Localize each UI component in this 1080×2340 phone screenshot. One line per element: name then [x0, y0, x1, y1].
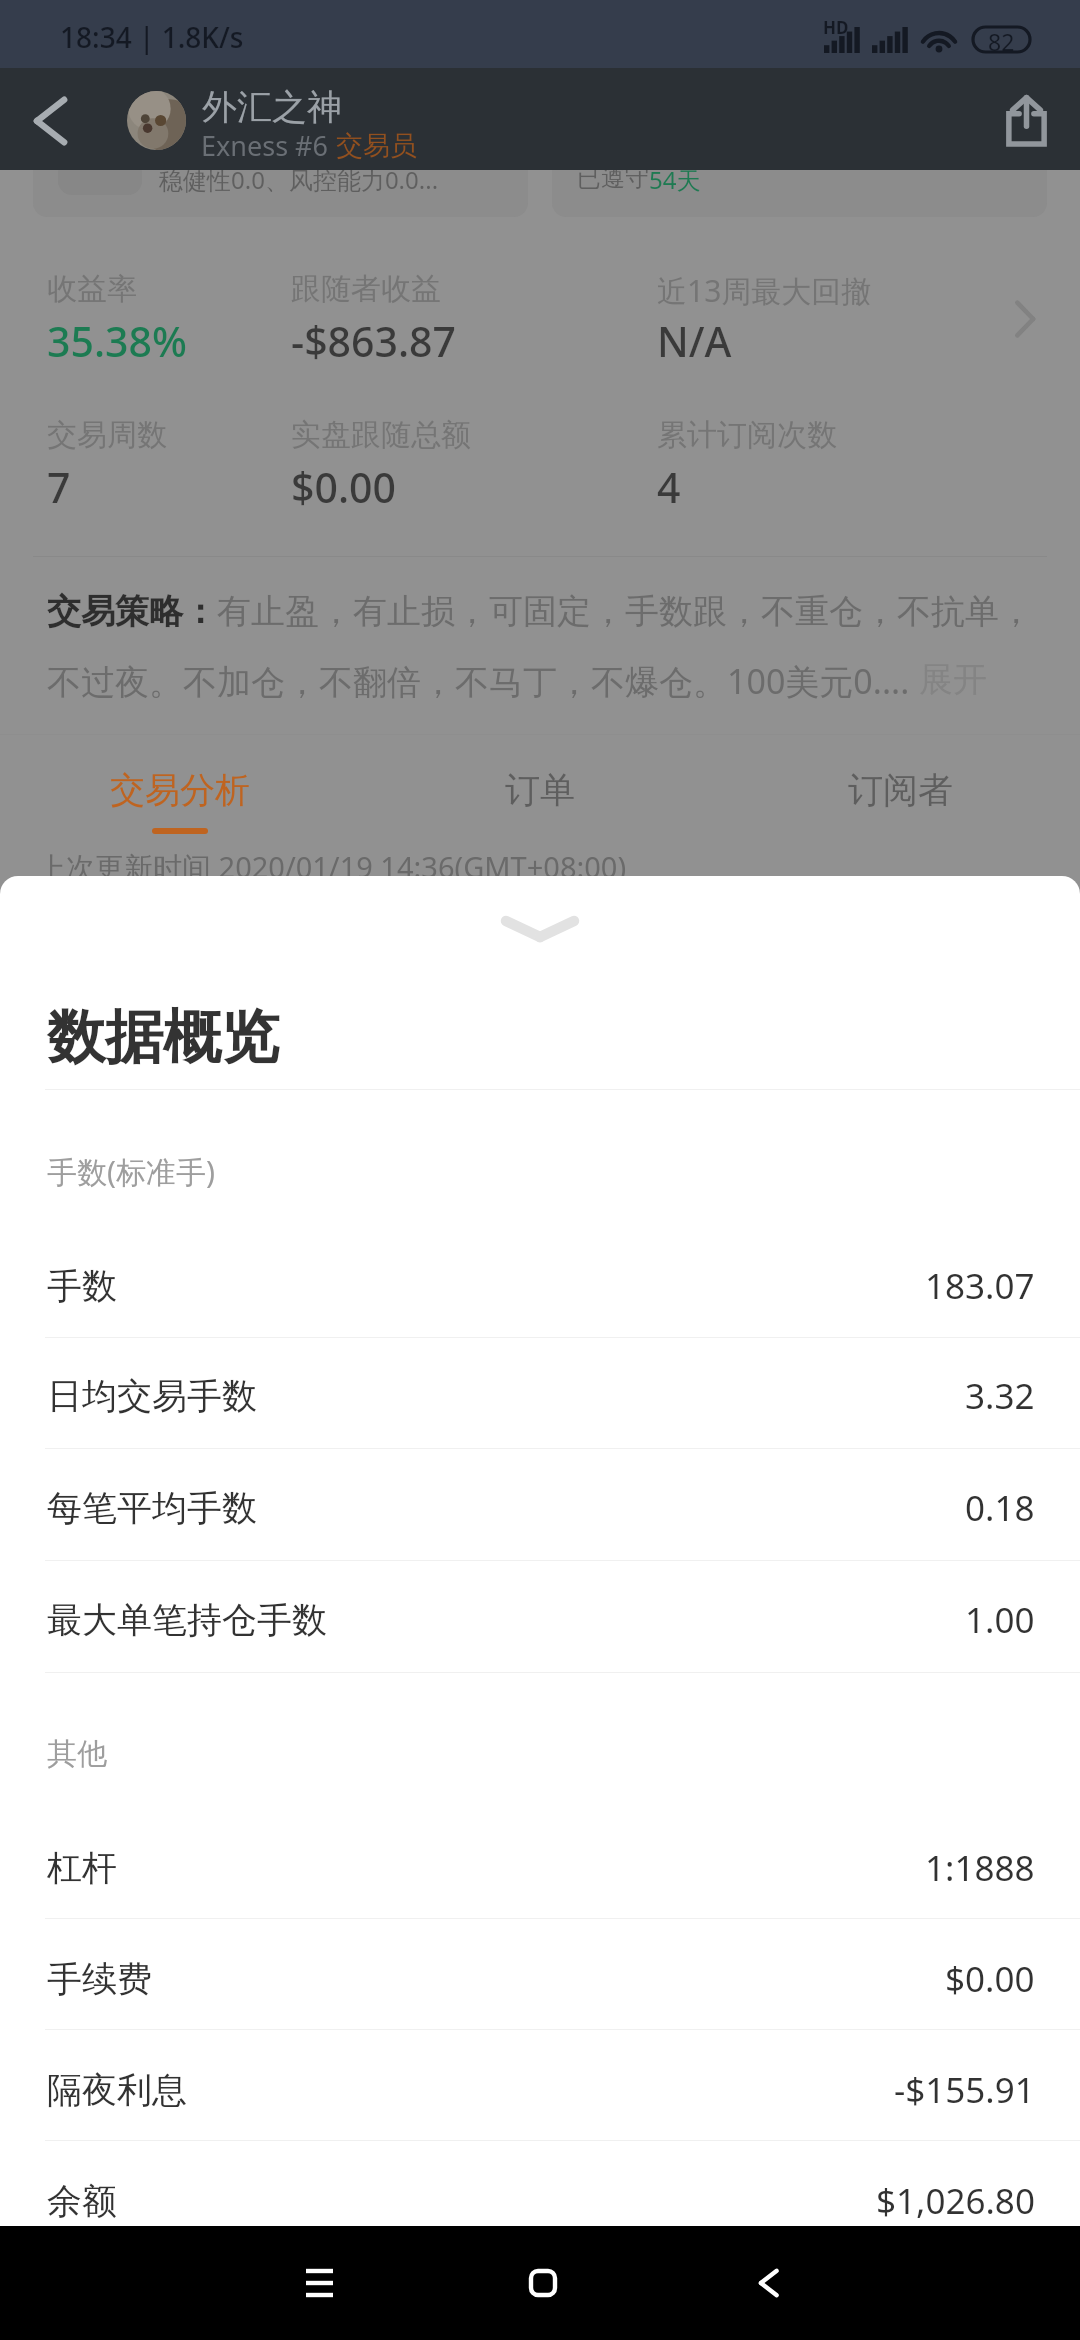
button[interactable]: 手数 [0, 1231, 1080, 1341]
staticText: 余额 [47, 2179, 117, 2223]
staticText: Exness #6 [201, 127, 336, 164]
staticText: 近13周最大回撤 [657, 270, 872, 311]
staticText: 1:1888 [925, 1844, 1035, 1892]
staticText: 隔夜利息 [47, 2068, 187, 2112]
button[interactable]: 日均交易手数 [0, 1341, 1080, 1451]
staticText: 手续费 [47, 1957, 152, 2001]
button[interactable]: Back [0, 68, 100, 170]
button[interactable]: 手续费 [0, 1924, 1080, 2034]
staticText: 上次更新时间 2020/01/19 14:36(GMT+08:00) [37, 847, 627, 887]
staticText: 已遵守 [577, 163, 649, 193]
staticText: 外汇之神 [202, 85, 342, 129]
button[interactable]: 订阅者 [720, 735, 1080, 847]
button[interactable]: 最大单笔持仓手数 [0, 1565, 1080, 1675]
staticText: 累计订阅次数 [657, 416, 837, 454]
button[interactable]: 隔夜利息 [0, 2035, 1080, 2145]
staticText: N/A [657, 313, 732, 369]
staticText: 稳健性0.0、风控能力0.0... [159, 163, 439, 196]
staticText: 0.18 [965, 1484, 1035, 1532]
button[interactable]: Home [508, 2248, 578, 2318]
staticText: 交易员 [336, 129, 417, 163]
staticText: 有止盈，有止损，可固定，手数跟，不重仓，不抗单， [217, 590, 1033, 633]
staticText: 不过夜。不加仓，不翻倍，不马丁，不爆仓。100美元0.... [47, 658, 919, 704]
staticText: 日均交易手数 [47, 1374, 257, 1418]
staticText: -$155.91 [894, 2066, 1035, 2114]
button[interactable]: 订单 [360, 735, 720, 847]
staticText: 订单 [505, 768, 575, 812]
staticText: 交易周数 [47, 416, 167, 454]
staticText: 订阅者 [848, 768, 953, 812]
staticText: 实盘跟随总额 [291, 416, 471, 454]
staticText: 其他 [47, 1735, 107, 1773]
button[interactable]: 杠杆 [0, 1813, 1080, 1923]
staticText: 82 [988, 26, 1015, 51]
staticText: 183.07 [925, 1262, 1035, 1310]
staticText: 最大单笔持仓手数 [47, 1598, 327, 1642]
staticText: HD [823, 16, 849, 39]
staticText: 7 [47, 459, 71, 515]
staticText: 35.38% [47, 313, 187, 369]
staticText: 跟随者收益 [291, 270, 441, 308]
staticText: -$863.87 [291, 313, 457, 369]
staticText: 杠杆 [47, 1846, 117, 1890]
staticText: 54天 [649, 163, 701, 196]
staticText: 收益率 [47, 270, 137, 308]
staticText: 4 [657, 459, 681, 515]
staticText: $1,026.80 [876, 2177, 1035, 2225]
staticText: 交易策略： [47, 590, 217, 633]
button[interactable]: Collapse [0, 876, 1080, 972]
button[interactable]: Share [978, 68, 1078, 170]
staticText: 展开 [919, 658, 987, 701]
staticText: $0.00 [945, 1955, 1035, 2003]
staticText: 数据概览 [47, 1001, 279, 1074]
staticText: 18:34 | 1.8K/s [60, 18, 244, 56]
staticText: $0.00 [291, 459, 396, 515]
staticText: 交易分析 [110, 768, 250, 812]
staticText: 手数 [47, 1264, 117, 1308]
staticText: 3.32 [965, 1372, 1035, 1420]
staticText: 1.00 [965, 1596, 1035, 1644]
button[interactable]: 余额 [0, 2146, 1080, 2256]
staticText: 手数(标准手) [47, 1151, 215, 1192]
button[interactable]: 交易分析 [0, 735, 360, 847]
staticText: 每笔平均手数 [47, 1486, 257, 1530]
button[interactable]: Recent apps [284, 2248, 354, 2318]
button[interactable]: 每笔平均手数 [0, 1453, 1080, 1563]
button[interactable]: Back [734, 2248, 804, 2318]
